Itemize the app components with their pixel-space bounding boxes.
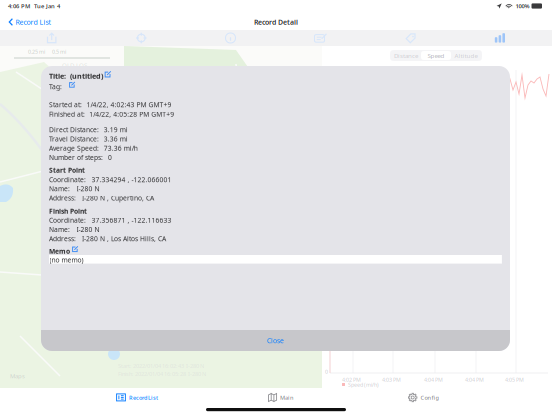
staticText: 4:03 PM	[382, 376, 401, 383]
staticText: Start Point	[49, 166, 85, 175]
staticText: Finish: 2022/01/04 16:05:28 I-280 N	[118, 370, 206, 378]
staticText: Address:	[49, 193, 76, 202]
staticText: I-280 N , Los Altos Hills, CA	[82, 234, 166, 243]
staticText: Number of steps:	[49, 153, 103, 162]
staticText: OLD LOS	[62, 61, 87, 69]
staticText: 0	[108, 153, 112, 162]
button[interactable]: Altitude	[451, 51, 481, 60]
staticText: 4:02 PM	[342, 376, 361, 383]
staticText: 100%	[515, 2, 529, 10]
staticText: Speed (mi/h)	[348, 381, 379, 388]
staticText: Finish Point	[49, 207, 87, 216]
button[interactable]: Distance	[391, 51, 421, 60]
button[interactable]: Edit title	[104, 71, 111, 78]
button[interactable]: Edit memo	[72, 246, 78, 252]
button[interactable]: Config	[408, 390, 438, 404]
staticText: Name:	[49, 184, 70, 193]
staticText: I-280 N , Cupertino, CA	[82, 193, 154, 202]
staticText: 4:05 PM	[505, 376, 524, 383]
staticText: 37.334294 , -122.066001	[91, 175, 171, 184]
staticText: Name:	[49, 225, 70, 234]
staticText: 3.19 mi	[104, 125, 128, 134]
staticText: 0.25 mi 0.5 mi	[28, 48, 66, 55]
button[interactable]: Close	[41, 330, 510, 351]
button[interactable]: Main	[268, 390, 294, 404]
staticText: Coordinate:	[49, 216, 86, 225]
staticText: 1/4/22, 4:02:43 PM GMT+9	[86, 100, 171, 109]
staticText: 73.36 mi/h	[104, 144, 138, 153]
button[interactable]: Speed	[421, 51, 451, 60]
staticText: Close	[267, 336, 284, 345]
staticText: I-280 N	[76, 184, 99, 193]
staticText: Main	[280, 394, 294, 401]
button[interactable]: Chart	[495, 33, 505, 43]
staticText: Coordinate:	[49, 175, 86, 184]
button[interactable]: Edit note	[314, 33, 327, 43]
staticText: Record Detail	[254, 17, 298, 27]
button[interactable]: Tag	[405, 33, 416, 44]
staticText: Travel Distance:	[49, 134, 99, 143]
staticText: Finished at:	[49, 110, 85, 119]
button[interactable]: Share	[46, 32, 57, 43]
staticText: Speed	[427, 51, 444, 60]
staticText: Distance	[394, 51, 418, 60]
staticText: 0	[325, 368, 328, 375]
staticText: 4:04 PM	[465, 376, 484, 383]
staticText: Memo	[49, 247, 70, 256]
staticText: Direct Distance:	[49, 125, 99, 134]
staticText: Tue Jan 4	[34, 2, 60, 10]
staticText: (no memo)	[50, 255, 84, 264]
staticText: 3.36 mi	[104, 134, 128, 143]
button[interactable]: Info	[225, 33, 235, 43]
staticText: I-280 N	[76, 225, 99, 234]
button[interactable]: Record List	[116, 390, 158, 404]
staticText: 1/4/22, 4:05:28 PM GMT+9	[89, 110, 174, 119]
button[interactable]: Record List	[0, 12, 58, 32]
staticText: Maps	[10, 372, 25, 380]
staticText: Start: 2022/01/04 16:02:43 I-280 N	[118, 362, 204, 370]
staticText: Altitude	[454, 51, 477, 60]
staticText: 4:04 PM	[424, 376, 443, 383]
staticText: Config	[420, 394, 438, 401]
staticText: 37.356871 , -122.116633	[91, 216, 171, 225]
staticText: 4:06 PM	[8, 2, 30, 10]
staticText: Record List	[129, 394, 158, 401]
staticText: Address:	[49, 234, 76, 243]
staticText: Average Speed:	[49, 144, 99, 153]
staticText: Started at:	[49, 100, 82, 109]
button[interactable]: Edit tag	[69, 82, 75, 88]
staticText: Tag:	[49, 82, 62, 91]
button[interactable]: Center on location	[136, 33, 147, 43]
staticText: Title: (untitled)	[49, 71, 103, 81]
staticText: Record List	[16, 17, 52, 27]
